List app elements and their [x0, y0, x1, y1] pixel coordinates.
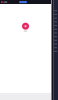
button[interactable]: App logo: [22, 23, 29, 30]
